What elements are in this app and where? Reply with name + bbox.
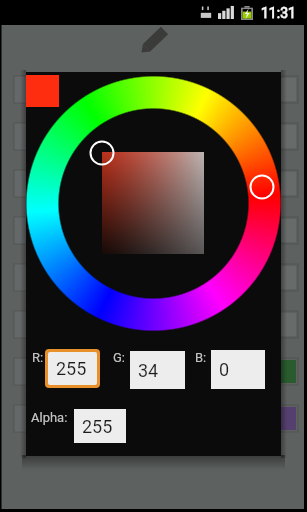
button[interactable]: 0 [211,350,265,389]
staticText: 34 [138,360,159,381]
button[interactable]: 34 [130,351,185,389]
staticText: Alpha: [31,410,68,425]
staticText: 11:31 [261,5,296,21]
staticText: G: [113,350,126,365]
staticText: R: [32,350,44,365]
button[interactable] [45,349,100,388]
staticText: 255 [56,358,87,379]
button[interactable]: 255 [74,409,126,443]
staticText: B: [195,350,207,365]
staticText: 0 [219,359,230,380]
staticText: 255 [82,416,113,437]
button[interactable]: 255 [48,352,97,385]
